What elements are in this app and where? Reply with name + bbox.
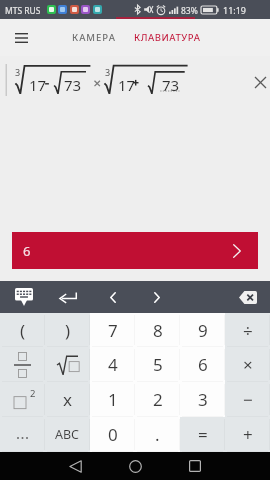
staticText: 17 — [118, 75, 136, 95]
staticText: 3 — [198, 388, 208, 411]
staticText: 73 — [162, 75, 180, 95]
button[interactable]: Enter — [46, 281, 90, 313]
button[interactable]: ÷ — [225, 313, 270, 347]
button[interactable]: Menu — [7, 24, 35, 52]
staticText: 73 — [64, 75, 82, 95]
button[interactable]: ABC — [45, 417, 90, 452]
staticText: 2 — [153, 388, 163, 411]
button[interactable]: Clear expression — [251, 73, 269, 91]
staticText: 3 — [105, 66, 111, 78]
staticText: 0 — [108, 423, 118, 446]
button[interactable]: . — [135, 417, 180, 452]
button[interactable]: 1 — [90, 382, 135, 417]
button[interactable]: 8 — [135, 313, 180, 347]
staticText: 7 — [108, 319, 118, 342]
staticText: ÷ — [243, 319, 253, 342]
button[interactable]: 7 — [90, 313, 135, 347]
button[interactable]: x — [45, 382, 90, 417]
staticText: КЛАВИАТУРА — [134, 31, 201, 44]
button[interactable]: = — [180, 417, 225, 452]
button[interactable]: 3 — [180, 382, 225, 417]
staticText: 3 — [15, 66, 21, 78]
staticText: MTS RUS — [5, 5, 41, 17]
button[interactable]: Move cursor left — [91, 281, 135, 313]
staticText: 8 — [153, 319, 163, 342]
staticText: 4 — [108, 353, 118, 376]
staticText: 9 — [198, 319, 208, 342]
staticText: + — [243, 423, 253, 446]
staticText: ABC — [55, 426, 80, 443]
staticText: 1 — [108, 388, 118, 411]
button[interactable]: ) — [45, 313, 90, 347]
staticText: 6 — [23, 242, 31, 260]
button[interactable]: КЛАВИАТУРА — [127, 22, 212, 53]
button[interactable]: Backspace — [226, 281, 270, 313]
staticText: − — [243, 388, 253, 411]
staticText: = — [198, 423, 208, 446]
staticText: . — [155, 423, 160, 446]
staticText: 5 — [153, 353, 163, 376]
button[interactable]: Recent apps — [165, 452, 225, 480]
staticText: 11:19 — [223, 4, 247, 16]
staticText: x — [63, 388, 72, 411]
button[interactable]: 6 — [180, 347, 225, 382]
staticText: 83% — [181, 5, 198, 17]
button[interactable]: ( — [0, 313, 45, 347]
staticText: × — [243, 353, 253, 376]
button[interactable]: Back — [45, 452, 105, 480]
button[interactable]: Power of two — [0, 382, 45, 417]
button[interactable]: Fraction — [0, 347, 45, 382]
staticText: КАМЕРА — [72, 31, 116, 44]
button[interactable]: Hide keyboard — [1, 281, 46, 313]
button[interactable]: 4 — [90, 347, 135, 382]
button[interactable]: − — [225, 382, 270, 417]
button[interactable]: Move cursor right — [135, 281, 179, 313]
button[interactable]: 5 — [135, 347, 180, 382]
button[interactable]: 6 — [12, 232, 258, 269]
button[interactable]: 0 — [90, 417, 135, 452]
button[interactable]: + — [225, 417, 270, 452]
button[interactable]: 2 — [135, 382, 180, 417]
staticText: 6 — [198, 353, 208, 376]
button[interactable]: Home — [105, 452, 165, 480]
staticText: ) — [65, 319, 71, 342]
button[interactable]: More — [0, 417, 45, 452]
staticText: ( — [20, 319, 26, 342]
button[interactable]: 9 — [180, 313, 225, 347]
staticText: 2 — [30, 387, 36, 400]
button[interactable]: Square root — [45, 347, 90, 382]
staticText: 17 — [29, 75, 47, 95]
button[interactable]: КАМЕРА — [61, 22, 127, 53]
button[interactable]: × — [225, 347, 270, 382]
